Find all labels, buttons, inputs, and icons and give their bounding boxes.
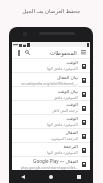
button[interactable]: Google Play — المقال: [12, 157, 90, 170]
staticText: اكسوفورد ملحق: [53, 95, 78, 100]
button[interactable]: الوقت: [12, 59, 90, 72]
staticText: اكسوفورد ملحق اليها: [47, 150, 78, 155]
staticText: بيان الوقت: [57, 88, 78, 94]
button[interactable]: Search: [23, 48, 32, 57]
button[interactable]: المقال: [12, 129, 90, 142]
button[interactable]: الوقت: [12, 115, 90, 128]
staticText: اكسوفورد ملحق اليها: [47, 66, 78, 71]
button[interactable]: Item action: [80, 76, 88, 84]
staticText: الوقت: [66, 102, 78, 107]
button[interactable]: Item action: [80, 104, 88, 112]
button[interactable]: Item action: [80, 118, 88, 126]
staticText: المحفوظات: [50, 50, 77, 56]
button[interactable]: More options: [14, 48, 23, 57]
staticText: اكسوفورد ملحق اليها: [47, 122, 78, 127]
button[interactable]: Item action: [80, 160, 88, 168]
button[interactable]: الوقت: [12, 101, 90, 114]
staticText: جحفظ الغرضان يف الجيل: [0, 7, 103, 14]
button[interactable]: Recents: [65, 170, 93, 183]
button[interactable]: Item action: [80, 146, 88, 154]
staticText: الترجمة اكسوفورد: [50, 136, 78, 141]
button[interactable]: Back: [9, 170, 37, 183]
staticText: play.google.com/store/apps/details?id=co…: [20, 165, 78, 170]
staticText: Google Play — المقال: [33, 158, 78, 164]
button[interactable]: بيان المقال: [12, 73, 90, 86]
staticText: الترجمة: [63, 144, 78, 149]
button[interactable]: بيان الوقت: [12, 87, 90, 100]
button[interactable]: الترجمة: [12, 143, 90, 156]
staticText: الوقت: [66, 116, 78, 121]
staticText: المقال: [65, 130, 78, 135]
staticText: الوقت: [66, 60, 78, 65]
button[interactable]: Navigation drawer: [79, 48, 88, 57]
staticText: en.wikipedia.org/wiki/Mehmed_Esperanto_o…: [20, 81, 78, 86]
button[interactable]: Item action: [80, 90, 88, 98]
button[interactable]: Item action: [80, 62, 88, 70]
staticText: بيان المقال: [56, 74, 78, 80]
button[interactable]: Home: [37, 170, 65, 183]
button[interactable]: Item action: [80, 132, 88, 140]
staticText: ترجمة النص كامل: [51, 108, 78, 113]
